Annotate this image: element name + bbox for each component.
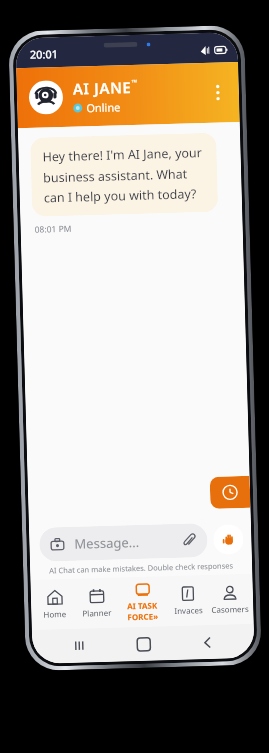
button[interactable]: Home <box>126 626 161 661</box>
button[interactable]: Invaces <box>166 575 210 626</box>
staticText: FORCE» <box>127 610 159 622</box>
staticText: 08:01 PM <box>34 223 72 236</box>
staticText: Planner <box>82 607 112 618</box>
staticText: AI TASK <box>127 599 158 611</box>
staticText: Hey there! I'm AI Jane, your business as… <box>42 144 206 205</box>
staticText: ™ <box>131 78 138 88</box>
button[interactable]: Message... <box>39 523 208 562</box>
button[interactable]: Recents <box>62 628 97 663</box>
button[interactable]: Back <box>190 625 225 659</box>
button[interactable]: Hey there! I'm AI Jane, your business as… <box>30 133 218 217</box>
button[interactable] <box>28 80 63 115</box>
button[interactable]: AI TASK <box>117 576 168 627</box>
staticText: Message... <box>74 532 183 553</box>
staticText: 20:01 <box>29 46 59 62</box>
staticText: AI JANE <box>72 77 132 99</box>
staticText: AI Chat can make mistakes. Double check … <box>49 560 233 575</box>
button[interactable]: Planner <box>75 578 119 629</box>
staticText: Casomers <box>211 603 249 615</box>
button[interactable]: Stop <box>213 524 244 555</box>
staticText: Online <box>86 99 121 115</box>
button[interactable]: History <box>210 476 250 509</box>
button[interactable]: Casomers <box>208 574 252 625</box>
button[interactable]: More options <box>204 79 231 106</box>
staticText: Home <box>43 608 66 620</box>
staticText: Invaces <box>174 604 203 616</box>
button[interactable]: Home <box>32 579 77 630</box>
